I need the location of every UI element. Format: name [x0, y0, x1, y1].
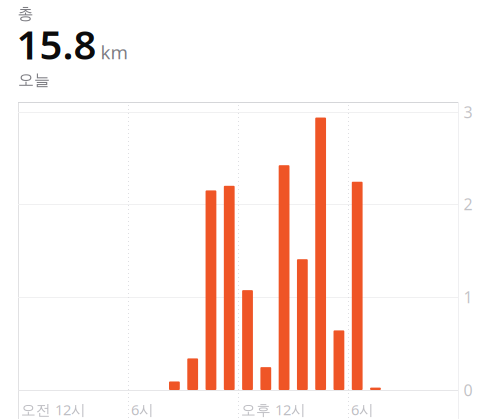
- button[interactable]: 시간별 거리 차트: [0, 0, 480, 420]
- staticText: 15.8: [16, 17, 96, 71]
- staticText: 3: [463, 101, 472, 123]
- button[interactable]: 총: [0, 0, 480, 96]
- staticText: 1: [463, 286, 472, 308]
- staticText: 오늘: [18, 70, 50, 90]
- staticText: 오전 12시: [21, 400, 86, 419]
- staticText: 오후 12시: [241, 400, 306, 419]
- staticText: 6시: [131, 400, 154, 419]
- staticText: 6시: [351, 400, 374, 419]
- staticText: km: [100, 40, 127, 64]
- staticText: 0: [463, 379, 472, 401]
- staticText: 총: [17, 4, 33, 24]
- staticText: 2: [463, 193, 472, 215]
